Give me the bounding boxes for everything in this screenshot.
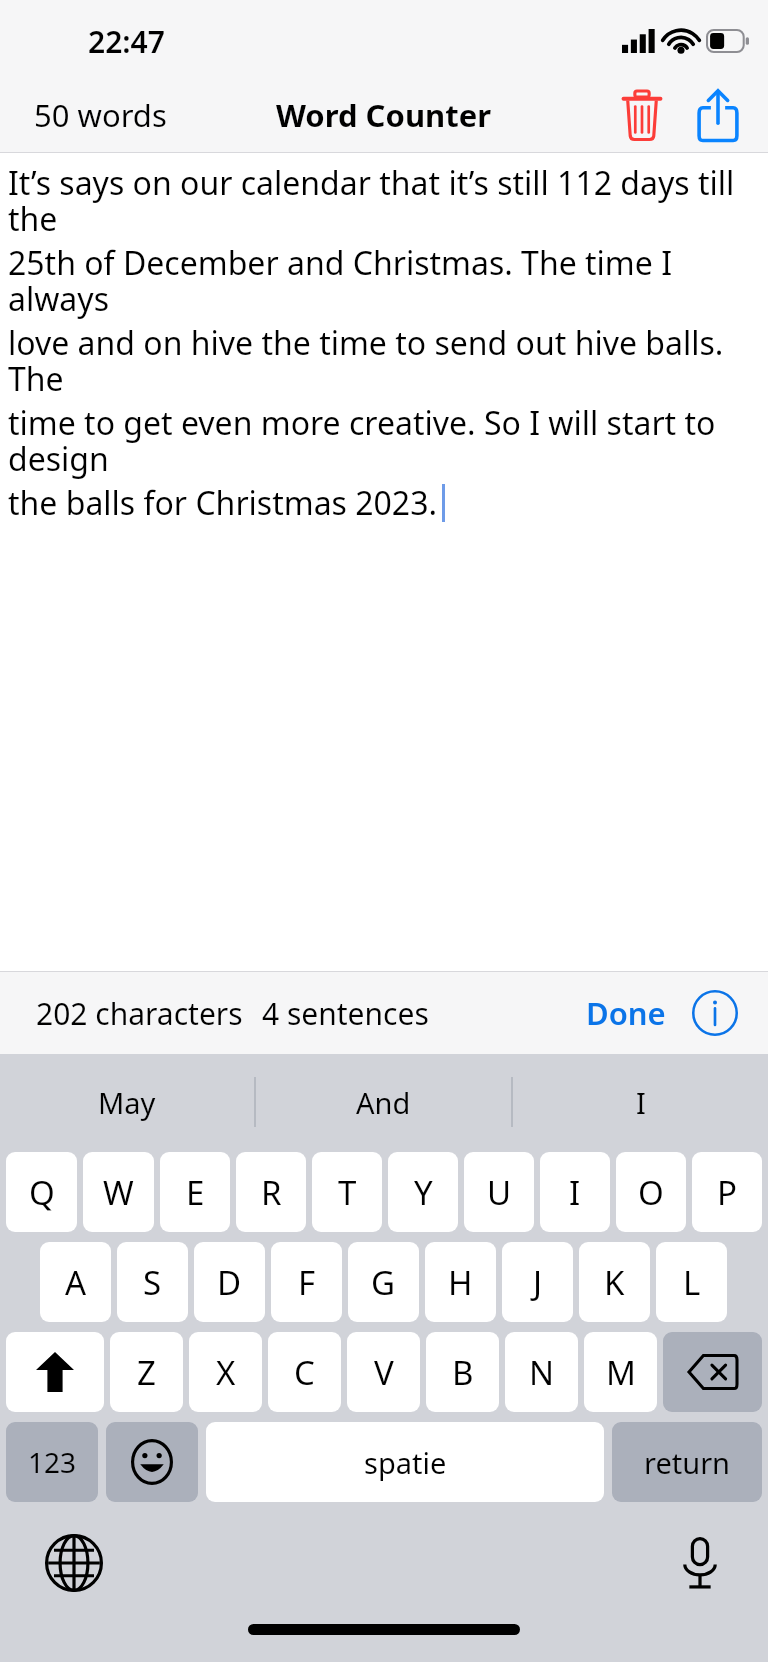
staticText: the balls for Christmas 2023. — [8, 481, 438, 525]
button[interactable]: Backspace — [663, 1332, 762, 1412]
button[interactable]: T — [312, 1152, 382, 1232]
button[interactable]: 123 — [6, 1422, 98, 1502]
button[interactable]: And — [256, 1083, 511, 1122]
button[interactable]: Z — [110, 1332, 183, 1412]
button[interactable]: Emoji — [106, 1422, 198, 1502]
staticText: Q — [29, 1170, 55, 1215]
button[interactable]: P — [692, 1152, 762, 1232]
staticText: 4 sentences — [262, 993, 429, 1034]
staticText: And — [356, 1083, 411, 1122]
staticText: May — [98, 1083, 156, 1122]
button[interactable]: Shift — [6, 1332, 104, 1412]
staticText: R — [261, 1170, 282, 1215]
staticText: return — [644, 1443, 731, 1482]
button[interactable]: Info — [688, 986, 742, 1040]
button[interactable]: Done — [578, 982, 674, 1044]
button[interactable]: X — [189, 1332, 262, 1412]
staticText: O — [638, 1170, 664, 1215]
button[interactable]: Q — [6, 1152, 77, 1232]
staticText: F — [298, 1260, 316, 1305]
button[interactable]: May — [0, 1083, 254, 1122]
staticText: X — [216, 1350, 236, 1395]
staticText: 25th of December and Christmas. The time… — [8, 241, 760, 321]
button[interactable]: G — [348, 1242, 419, 1322]
staticText: It’s says on our calendar that it’s stil… — [8, 161, 760, 241]
button[interactable]: Next keyboard — [34, 1523, 114, 1603]
staticText: 202 characters — [36, 993, 243, 1034]
staticText: Y — [414, 1170, 433, 1215]
staticText: Z — [137, 1350, 156, 1395]
button[interactable]: A — [40, 1242, 111, 1322]
button[interactable]: D — [194, 1242, 265, 1322]
staticText: L — [683, 1260, 701, 1305]
button[interactable]: W — [83, 1152, 154, 1232]
staticText: B — [452, 1350, 474, 1395]
staticText: W — [103, 1170, 134, 1215]
button[interactable]: N — [505, 1332, 578, 1412]
staticText: U — [487, 1170, 512, 1215]
button[interactable]: Dictate — [660, 1523, 740, 1603]
button[interactable]: C — [268, 1332, 341, 1412]
staticText: 50 words — [34, 94, 167, 136]
button[interactable]: return — [612, 1422, 762, 1502]
button[interactable]: 50 words — [0, 86, 179, 144]
button[interactable]: Share — [680, 78, 756, 152]
button[interactable]: V — [347, 1332, 420, 1412]
button[interactable]: spatie — [206, 1422, 604, 1502]
button[interactable]: H — [425, 1242, 496, 1322]
staticText: 22:47 — [88, 21, 165, 62]
button[interactable]: L — [656, 1242, 727, 1322]
button[interactable]: R — [236, 1152, 306, 1232]
staticText: P — [717, 1170, 737, 1215]
staticText: K — [604, 1260, 625, 1305]
button[interactable]: K — [579, 1242, 650, 1322]
staticText: Word Counter — [276, 94, 492, 136]
staticText: 123 — [28, 1443, 77, 1481]
staticText: spatie — [364, 1443, 447, 1482]
button[interactable]: I — [513, 1083, 768, 1122]
staticText: G — [371, 1260, 396, 1305]
button[interactable]: E — [160, 1152, 230, 1232]
button[interactable]: U — [464, 1152, 534, 1232]
staticText: N — [529, 1350, 555, 1395]
staticText: time to get even more creative. So I wil… — [8, 401, 760, 481]
staticText: love and on hive the time to send out hi… — [8, 321, 760, 401]
staticText: C — [294, 1350, 315, 1395]
staticText: T — [338, 1170, 357, 1215]
staticText: M — [606, 1350, 636, 1395]
button[interactable]: M — [584, 1332, 657, 1412]
button[interactable]: I — [540, 1152, 610, 1232]
staticText: I — [569, 1170, 581, 1215]
staticText: J — [533, 1260, 543, 1305]
staticText: H — [448, 1260, 473, 1305]
button[interactable]: F — [271, 1242, 342, 1322]
button[interactable]: Delete — [604, 78, 680, 152]
button[interactable]: B — [426, 1332, 499, 1412]
button[interactable]: S — [117, 1242, 188, 1322]
button[interactable]: O — [616, 1152, 686, 1232]
staticText: Done — [586, 992, 666, 1034]
staticText: A — [65, 1260, 87, 1305]
staticText: I — [636, 1083, 646, 1122]
staticText: V — [374, 1350, 394, 1395]
button[interactable]: J — [502, 1242, 573, 1322]
staticText: D — [217, 1260, 242, 1305]
button[interactable]: Y — [388, 1152, 458, 1232]
staticText: E — [186, 1170, 205, 1215]
staticText: S — [143, 1260, 162, 1305]
